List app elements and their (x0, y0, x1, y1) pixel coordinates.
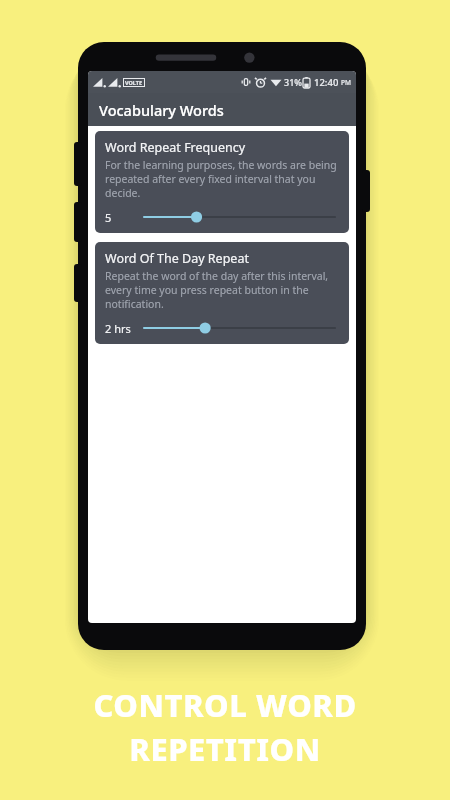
button[interactable]: Word Of The Day Repeat (95, 242, 349, 344)
staticText: REPETITION (129, 728, 321, 770)
staticText: CONTROL WORD (93, 684, 357, 726)
button[interactable]: Word Repeat Frequency (95, 131, 349, 233)
staticText: PM (341, 78, 351, 87)
button[interactable]: Adjust Word Repeat Frequency (138, 207, 341, 227)
staticText: Vocabulary Words (99, 100, 224, 120)
staticText: For the learning purposes, the words are… (105, 158, 341, 200)
staticText: Repeat the word of the day after this in… (105, 269, 341, 311)
staticText: 12:40 (314, 76, 339, 89)
button[interactable]: Adjust Word Of The Day Repeat (138, 318, 341, 338)
staticText: 31% (284, 76, 302, 88)
staticText: 2 hrs (105, 321, 131, 336)
button[interactable]: Vocabulary Words (88, 93, 356, 126)
staticText: VOLTE (125, 79, 143, 86)
staticText: Word Of The Day Repeat (105, 250, 249, 267)
staticText: 5 (105, 210, 112, 225)
staticText: Word Repeat Frequency (105, 139, 246, 156)
